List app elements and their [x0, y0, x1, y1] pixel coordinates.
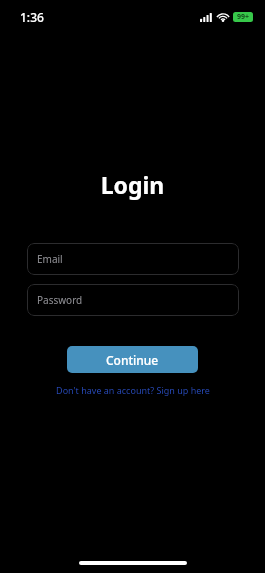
staticText: Continue — [106, 352, 159, 368]
staticText: Login — [0, 169, 265, 200]
staticText: Email — [37, 252, 63, 266]
staticText: 1:36 — [20, 9, 44, 25]
staticText: Password — [37, 293, 83, 307]
staticText: 99+ — [237, 12, 250, 22]
button[interactable]: Continue — [67, 346, 198, 373]
button[interactable]: Email — [27, 243, 239, 275]
button[interactable]: Don't have an account? Sign up here — [50, 382, 216, 398]
staticText: Don't have an account? Sign up here — [56, 384, 210, 396]
button[interactable]: Password — [27, 284, 239, 316]
